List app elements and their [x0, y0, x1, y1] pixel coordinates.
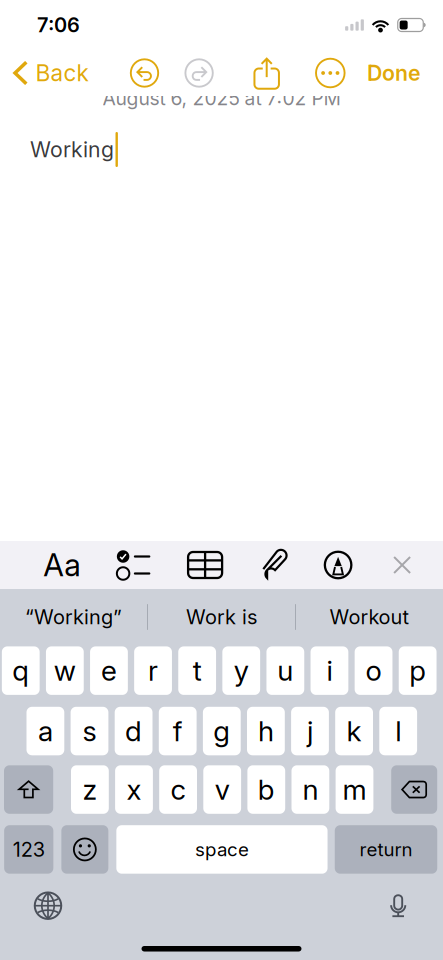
button[interactable]: f: [159, 707, 197, 755]
button[interactable]: z: [71, 765, 109, 814]
staticText: c: [171, 773, 186, 806]
button[interactable]: Text format: [38, 541, 86, 589]
button[interactable]: a: [26, 707, 64, 755]
button[interactable]: c: [159, 765, 197, 814]
staticText: w: [54, 654, 76, 688]
button[interactable]: k: [335, 707, 373, 755]
button[interactable]: j: [291, 707, 329, 755]
button[interactable]: Attach: [254, 541, 294, 589]
staticText: y: [234, 654, 249, 688]
button[interactable]: Delete: [391, 765, 437, 814]
button[interactable]: y: [222, 646, 260, 695]
staticText: o: [365, 654, 381, 688]
staticText: z: [82, 773, 97, 806]
button[interactable]: Workout: [296, 595, 443, 639]
staticText: e: [101, 654, 117, 688]
button[interactable]: w: [46, 646, 84, 695]
staticText: u: [277, 654, 293, 688]
button[interactable]: Share: [254, 57, 279, 89]
button[interactable]: Checklist: [112, 541, 156, 589]
button[interactable]: h: [247, 707, 285, 755]
button[interactable]: 123: [4, 825, 53, 874]
staticText: Back: [35, 59, 88, 87]
staticText: f: [173, 714, 183, 748]
button[interactable]: r: [134, 646, 172, 695]
staticText: b: [258, 773, 275, 806]
staticText: i: [326, 654, 332, 688]
button[interactable]: q: [2, 646, 40, 695]
staticText: m: [342, 773, 366, 806]
button[interactable]: Work is: [148, 595, 295, 639]
button[interactable]: Shift: [4, 765, 53, 814]
button[interactable]: More: [315, 58, 345, 88]
staticText: g: [213, 714, 230, 748]
staticText: n: [302, 773, 318, 806]
button[interactable]: Back: [0, 50, 98, 96]
button[interactable]: Next keyboard: [34, 892, 62, 920]
staticText: r: [148, 654, 158, 688]
button[interactable]: n: [291, 765, 329, 814]
staticText: space: [195, 838, 249, 861]
staticText: d: [125, 714, 142, 748]
button[interactable]: “Working”: [0, 595, 147, 639]
button[interactable]: Done: [357, 50, 443, 96]
button[interactable]: Emoji: [61, 825, 108, 874]
staticText: x: [126, 773, 141, 806]
button[interactable]: Redo: [184, 58, 214, 88]
staticText: Workout: [329, 605, 409, 629]
staticText: Working: [30, 137, 114, 162]
button[interactable]: Markup: [318, 541, 358, 589]
button[interactable]: return: [335, 825, 437, 874]
staticText: Aa: [43, 546, 81, 583]
button[interactable]: v: [203, 765, 241, 814]
button[interactable]: b: [247, 765, 285, 814]
button[interactable]: g: [203, 707, 241, 755]
staticText: p: [409, 654, 426, 688]
button[interactable]: t: [178, 646, 216, 695]
staticText: Done: [367, 60, 421, 86]
button[interactable]: Undo: [129, 58, 159, 88]
staticText: k: [347, 714, 362, 748]
button[interactable]: space: [116, 825, 328, 874]
staticText: Work is: [186, 605, 257, 629]
staticText: 7:06: [37, 13, 80, 37]
staticText: t: [193, 654, 202, 688]
button[interactable]: e: [90, 646, 128, 695]
button[interactable]: l: [379, 707, 417, 755]
staticText: j: [307, 714, 313, 748]
staticText: 123: [13, 837, 45, 862]
staticText: q: [12, 654, 29, 688]
button[interactable]: d: [115, 707, 152, 755]
button[interactable]: Table: [183, 541, 227, 589]
button[interactable]: o: [355, 646, 392, 695]
button[interactable]: i: [310, 646, 348, 695]
staticText: h: [258, 714, 274, 748]
button[interactable]: x: [115, 765, 153, 814]
staticText: a: [38, 714, 53, 748]
button[interactable]: p: [399, 646, 436, 695]
staticText: l: [395, 714, 401, 748]
button[interactable]: m: [336, 765, 373, 814]
button[interactable]: u: [266, 646, 304, 695]
button[interactable]: Dictate: [390, 894, 407, 917]
staticText: “Working”: [25, 605, 122, 629]
staticText: v: [215, 773, 230, 806]
button[interactable]: Hide keyboard: [384, 541, 420, 589]
staticText: return: [359, 838, 412, 861]
staticText: s: [82, 714, 96, 748]
staticText: August 6, 2025 at 7:02 PM: [102, 87, 340, 110]
button[interactable]: s: [71, 707, 108, 755]
